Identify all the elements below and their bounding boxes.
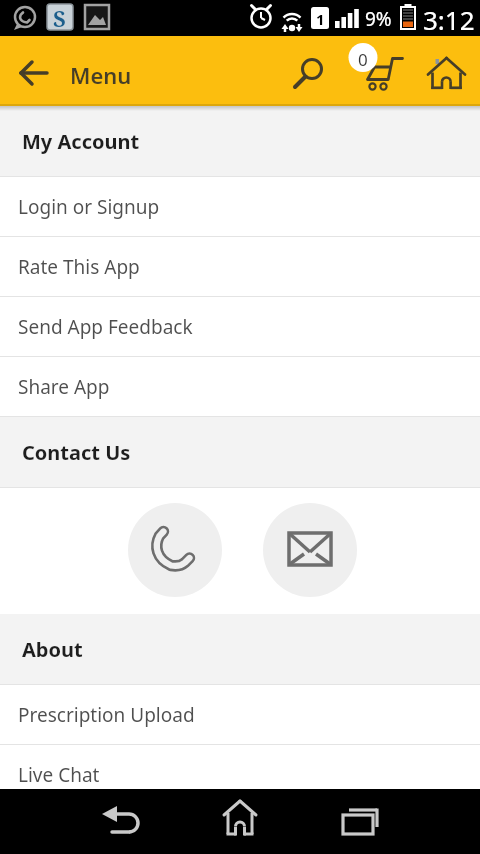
staticText: 9% bbox=[365, 6, 392, 32]
staticText: Prescription Upload bbox=[18, 702, 195, 728]
button[interactable]: 0 bbox=[344, 40, 410, 106]
staticText: Contact Us bbox=[22, 439, 131, 466]
button[interactable]: Send App Feedback bbox=[0, 297, 480, 357]
button[interactable] bbox=[328, 789, 392, 853]
button[interactable]: Rate This App bbox=[0, 237, 480, 297]
staticText: S bbox=[53, 3, 66, 33]
button[interactable] bbox=[422, 52, 472, 102]
staticText: 1 bbox=[316, 9, 325, 29]
button[interactable] bbox=[9, 49, 57, 97]
staticText: About bbox=[22, 636, 83, 663]
button[interactable] bbox=[208, 789, 272, 853]
staticText: Send App Feedback bbox=[18, 314, 193, 340]
button[interactable]: Live Chat bbox=[0, 745, 480, 805]
staticText: 3:12 bbox=[423, 2, 475, 37]
button[interactable] bbox=[290, 54, 334, 98]
staticText: 0 bbox=[358, 48, 368, 71]
button[interactable]: Share App bbox=[0, 357, 480, 417]
button[interactable] bbox=[128, 503, 222, 597]
staticText: Rate This App bbox=[18, 254, 140, 280]
button[interactable]: Login or Signup bbox=[0, 177, 480, 237]
staticText: Login or Signup bbox=[18, 194, 160, 220]
staticText: Menu bbox=[70, 60, 132, 90]
button[interactable] bbox=[88, 789, 152, 853]
staticText: Share App bbox=[18, 374, 110, 400]
staticText: My Account bbox=[22, 128, 140, 155]
button[interactable]: Prescription Upload bbox=[0, 685, 480, 745]
button[interactable] bbox=[263, 503, 357, 597]
staticText: Live Chat bbox=[18, 762, 100, 788]
